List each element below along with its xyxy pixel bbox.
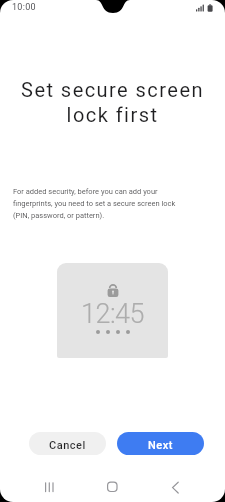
staticText: 12:45 [81,298,145,330]
staticText: For added security, before you can add y… [13,187,176,219]
button[interactable] [168,478,182,496]
button[interactable]: Next [117,432,204,455]
staticText: lock first [0,103,225,126]
staticText: Set secure screen [0,78,225,101]
staticText: 10:00 [12,2,36,13]
staticText: Cancel [49,439,86,452]
staticText: Next [148,439,173,452]
button[interactable] [104,478,121,495]
button[interactable] [41,479,58,495]
button[interactable]: Cancel [29,432,106,455]
